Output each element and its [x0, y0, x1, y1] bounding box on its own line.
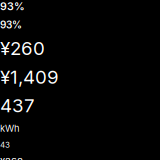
staticText: 93%	[0, 0, 25, 13]
staticText: ¥260	[0, 156, 23, 160]
staticText: ¥260	[0, 37, 45, 60]
staticText: 437	[0, 94, 35, 117]
staticText: ¥1,409	[0, 66, 59, 88]
staticText: 43	[0, 140, 10, 150]
staticText: kWh	[0, 123, 20, 134]
staticText: 93%	[0, 19, 22, 31]
